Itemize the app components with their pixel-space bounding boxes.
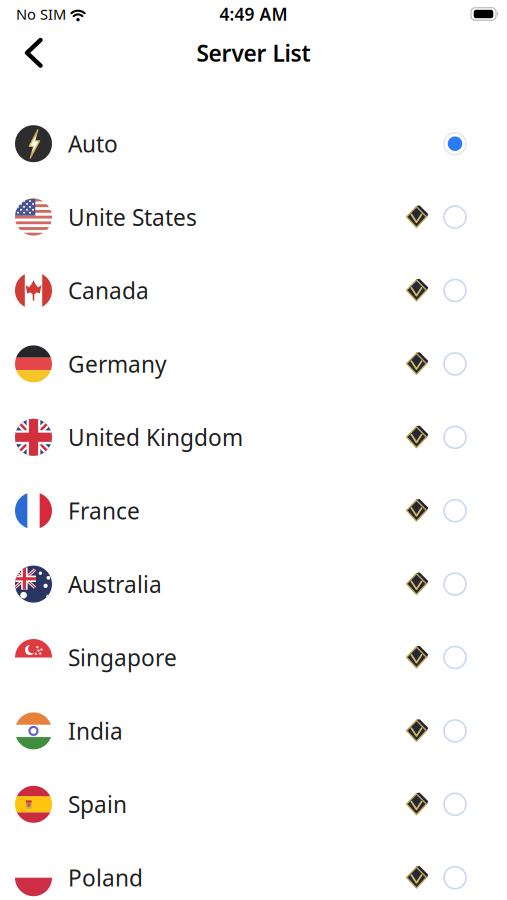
staticText: Australia [68,569,162,599]
staticText: India [68,716,123,746]
button[interactable]: India [0,694,507,768]
staticText: Singapore [68,642,177,672]
button[interactable]: Canada [0,254,507,327]
button[interactable]: Unite States [0,180,507,254]
button[interactable]: Germany [0,327,507,401]
staticText: Canada [68,275,149,305]
staticText: 4:49 AM [219,2,287,25]
button[interactable]: Singapore [0,621,507,694]
button[interactable]: France [0,474,507,547]
button[interactable]: Australia [0,547,507,621]
staticText: No SIM [16,4,66,24]
button[interactable]: Auto [0,107,507,180]
staticText: Poland [68,863,143,893]
staticText: Server List [196,38,310,68]
staticText: Unite States [68,202,197,232]
staticText: United Kingdom [68,422,243,452]
button[interactable]: Back [0,39,43,67]
button[interactable]: United Kingdom [0,401,507,474]
button[interactable]: Spain [0,768,507,841]
staticText: France [68,496,140,526]
staticText: Spain [68,789,127,819]
button[interactable]: Poland [0,841,507,900]
staticText: Germany [68,349,167,379]
staticText: Auto [68,129,118,159]
